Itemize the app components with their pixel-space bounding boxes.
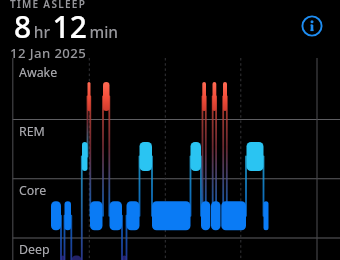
- staticText: REM: [19, 123, 45, 140]
- staticText: 12 Jan 2025: [10, 44, 87, 62]
- staticText: TIME ASLEEP: [10, 0, 87, 11]
- staticText: Core: [19, 182, 47, 199]
- button[interactable]: [300, 14, 324, 38]
- staticText: 8 hr 12 min: [14, 6, 119, 47]
- staticText: Awake: [19, 64, 58, 81]
- staticText: Deep: [19, 241, 50, 258]
